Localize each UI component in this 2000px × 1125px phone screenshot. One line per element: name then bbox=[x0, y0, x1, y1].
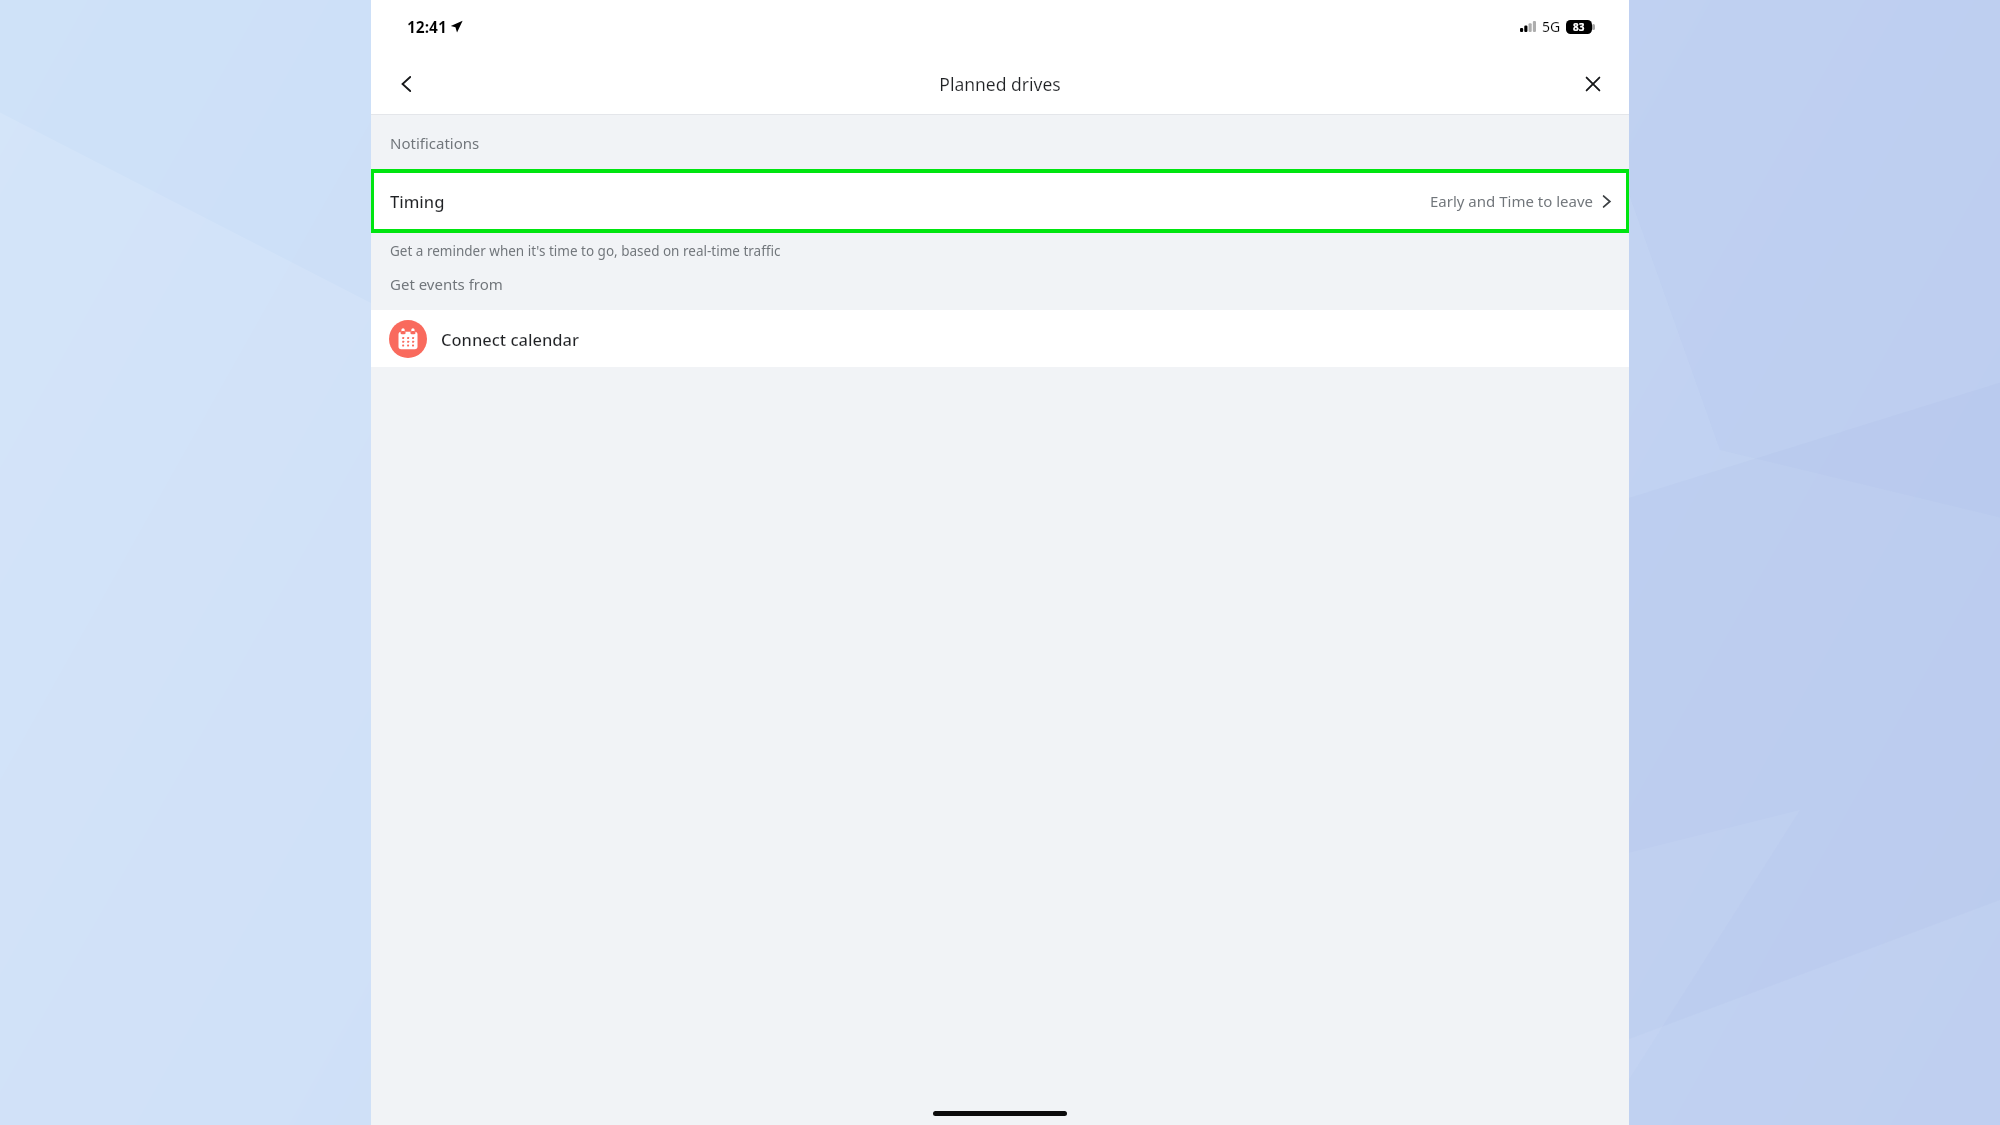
staticText: Timing bbox=[390, 190, 445, 212]
staticText: Early and Time to leave bbox=[1430, 191, 1593, 211]
staticText: 5G bbox=[1542, 17, 1561, 36]
staticText: 83 bbox=[1573, 20, 1585, 34]
staticText: Get a reminder when it's time to go, bas… bbox=[390, 242, 781, 260]
button[interactable]: Back bbox=[385, 62, 429, 106]
staticText: Planned drives bbox=[939, 72, 1061, 96]
staticText: Notifications bbox=[390, 133, 480, 153]
button[interactable]: Close bbox=[1571, 62, 1615, 106]
staticText: 12:41 bbox=[407, 16, 447, 37]
staticText: Connect calendar bbox=[441, 328, 579, 350]
button[interactable]: Timing bbox=[374, 173, 1626, 229]
staticText: Get events from bbox=[390, 274, 503, 294]
button[interactable]: Connect calendar bbox=[371, 310, 1629, 367]
